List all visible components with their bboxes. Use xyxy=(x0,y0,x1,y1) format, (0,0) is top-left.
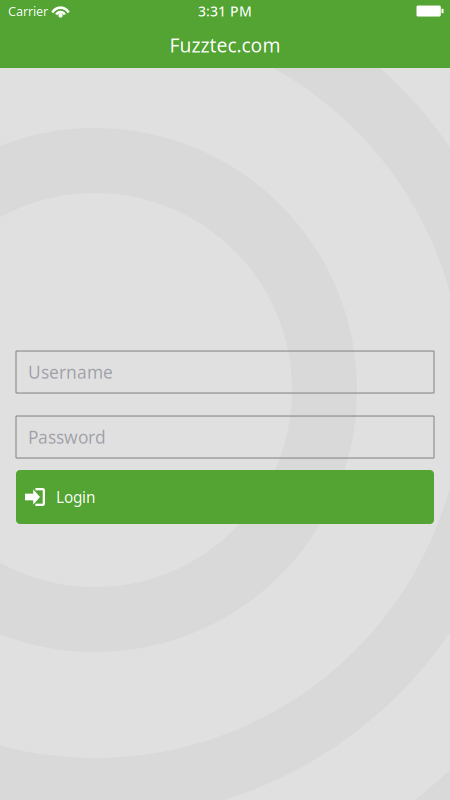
staticText: Login xyxy=(56,487,95,507)
staticText: Password xyxy=(28,425,106,449)
staticText: 3:31 PM xyxy=(198,1,252,21)
button[interactable]: Login xyxy=(16,470,434,524)
button[interactable]: Username xyxy=(16,351,434,393)
staticText: Username xyxy=(28,360,113,384)
button[interactable]: Password xyxy=(16,416,434,458)
staticText: Carrier xyxy=(8,2,48,20)
staticText: Fuzztec.com xyxy=(169,32,280,58)
